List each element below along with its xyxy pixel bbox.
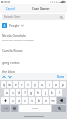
staticText: Nicola Garofalo (2, 33, 26, 37)
staticText: b (38, 99, 40, 103)
staticText: i (49, 83, 50, 87)
staticText: Camila Rosas (2, 48, 23, 52)
button[interactable]: j (42, 89, 48, 96)
button[interactable]: 123 (1, 105, 10, 112)
button[interactable]: greg cortez (0, 56, 67, 68)
button[interactable]: Search (52, 105, 66, 112)
staticText: Search User (4, 15, 21, 19)
button[interactable]: o (53, 81, 59, 88)
other: Search (60, 16, 63, 19)
button[interactable]: x (16, 97, 21, 104)
button[interactable]: l (56, 89, 62, 96)
staticText: Cancel (6, 7, 15, 11)
button[interactable]: d (16, 89, 21, 96)
button[interactable]: Previous field (2, 75, 6, 79)
staticText: t (27, 83, 29, 87)
button[interactable]: y (32, 81, 38, 88)
staticText: p (62, 83, 64, 87)
button[interactable]: People (0, 21, 67, 30)
button[interactable]: q (1, 81, 6, 88)
staticText: Technical Support Engineer (2, 38, 35, 41)
staticText: l (59, 91, 60, 95)
button[interactable]: space (19, 105, 51, 112)
staticText: d (18, 91, 20, 95)
staticText: s (12, 91, 14, 95)
button[interactable]: g (28, 89, 34, 96)
button[interactable]: Shift (1, 97, 9, 104)
staticText: greg cortez (2, 60, 20, 64)
button[interactable]: the blog (0, 68, 67, 73)
button[interactable]: u (39, 81, 45, 88)
button[interactable]: p (60, 81, 66, 88)
button[interactable]: Next field (8, 75, 12, 79)
staticText: the blog (2, 69, 15, 73)
button[interactable]: z (10, 97, 15, 104)
button[interactable]: v (29, 97, 35, 104)
staticText: Case Owner (32, 7, 50, 11)
staticText: g (30, 91, 32, 95)
staticText: x (18, 99, 20, 103)
button[interactable]: Search User (2, 14, 65, 20)
button[interactable]: c (22, 97, 28, 104)
staticText: People (9, 24, 20, 28)
button[interactable]: s (10, 89, 15, 96)
staticText: n (45, 99, 47, 103)
button[interactable]: h (35, 89, 41, 96)
button[interactable]: i (46, 81, 52, 88)
staticText: a (6, 91, 8, 95)
staticText: h (37, 91, 39, 95)
button[interactable]: Camila Rosas (0, 44, 67, 56)
button[interactable]: Emoji (11, 105, 18, 112)
staticText: f (24, 91, 26, 95)
button[interactable]: m (50, 97, 56, 104)
staticText: j (45, 91, 46, 95)
staticText: Done (57, 75, 65, 79)
button[interactable]: Cancel (4, 6, 16, 11)
button[interactable]: Delete (57, 97, 66, 104)
button[interactable]: w (7, 81, 12, 88)
button[interactable]: Done (57, 75, 65, 79)
staticText: space (32, 107, 38, 110)
staticText: u (41, 83, 43, 87)
staticText: c (24, 99, 26, 103)
staticText: q (3, 83, 5, 87)
staticText: y (34, 83, 36, 87)
button[interactable]: n (43, 97, 49, 104)
button[interactable]: Nicola Garofalo (0, 30, 67, 44)
staticText: z (12, 99, 14, 103)
staticText: w (8, 83, 11, 87)
button[interactable]: k (49, 89, 55, 96)
staticText: o (55, 83, 57, 87)
button[interactable]: b (36, 97, 42, 104)
button[interactable]: r (19, 81, 24, 88)
staticText: e (15, 83, 17, 87)
staticText: r (21, 83, 23, 87)
button[interactable]: f (22, 89, 27, 96)
button[interactable]: t (25, 81, 31, 88)
staticText: v (31, 99, 33, 103)
button[interactable]: a (4, 89, 9, 96)
staticText: m (51, 99, 55, 103)
staticText: 123 (4, 107, 8, 110)
staticText: k (51, 91, 53, 95)
button[interactable]: e (13, 81, 18, 88)
